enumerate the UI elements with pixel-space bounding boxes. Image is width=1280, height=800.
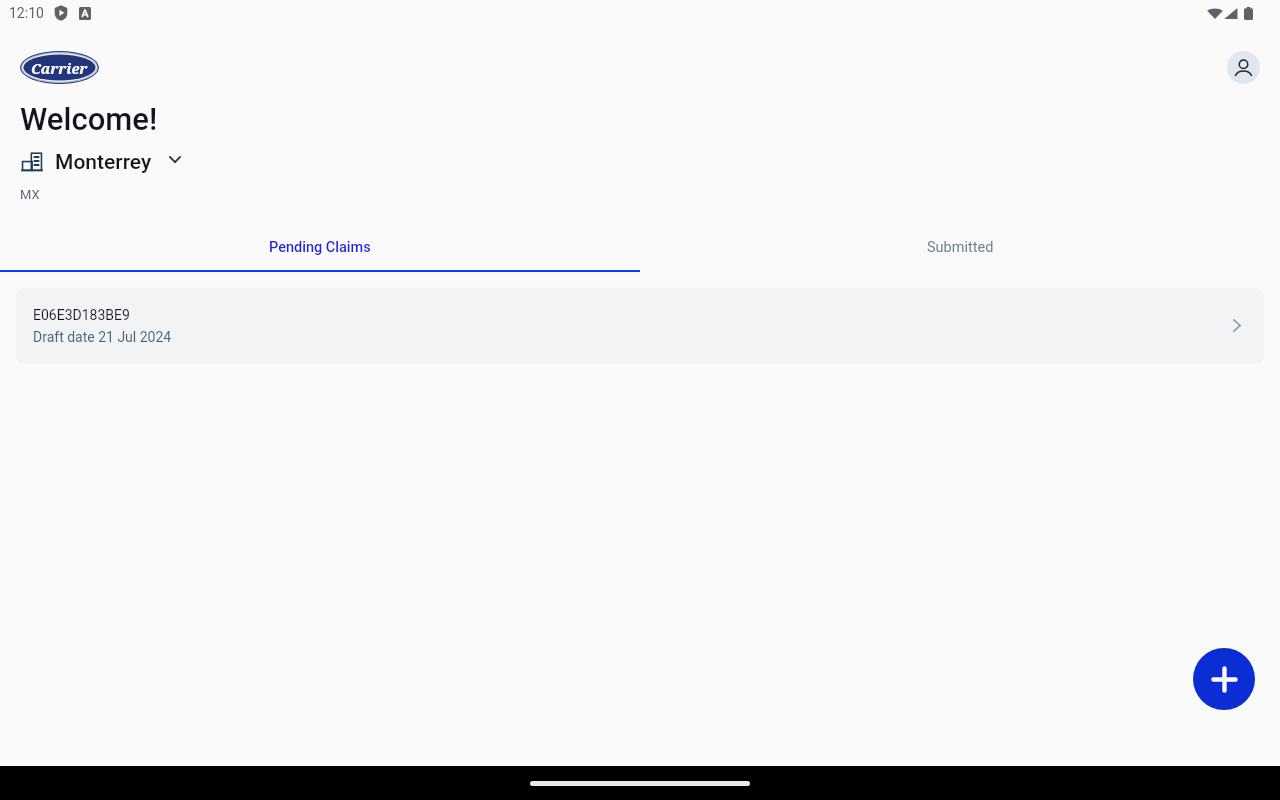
button[interactable]: Submitted — [640, 225, 1280, 269]
staticText: E06E3D183BE9 — [33, 307, 130, 323]
staticText: MX — [20, 187, 40, 202]
staticText: Monterrey — [55, 150, 152, 175]
staticText: Submitted — [927, 239, 994, 256]
button[interactable]: Create new claim — [1193, 648, 1255, 710]
staticText: Welcome! — [20, 101, 158, 137]
button[interactable]: E06E3D183BE9 — [16, 288, 1264, 364]
staticText: 12:10 — [9, 5, 44, 21]
staticText: Pending Claims — [269, 239, 371, 256]
button[interactable]: Profile — [1227, 51, 1260, 84]
staticText: Draft date 21 Jul 2024 — [33, 329, 172, 345]
button[interactable]: Pending Claims — [0, 225, 640, 269]
staticText: Carrier — [31, 58, 88, 78]
button[interactable]: Monterrey — [21, 148, 181, 176]
